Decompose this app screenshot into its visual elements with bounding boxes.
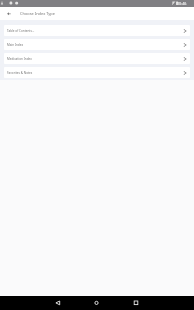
button[interactable]: Favorites & Notes — [4, 67, 190, 78]
staticText: Favorites & Notes — [7, 71, 33, 75]
staticText: Medication Index — [7, 57, 32, 61]
button[interactable]: Navigate up — [0, 7, 17, 20]
button[interactable]: Back — [0, 296, 78, 310]
staticText: 10:46 — [177, 1, 187, 6]
button[interactable]: Recent apps — [116, 296, 194, 310]
staticText: Main Index — [7, 43, 23, 47]
staticText: Table of Contents... — [7, 29, 35, 33]
staticText: Choose Index Type — [20, 11, 56, 16]
button[interactable]: Main Index — [4, 39, 190, 50]
button[interactable]: Medication Index — [4, 53, 190, 64]
button[interactable]: Home — [78, 296, 116, 310]
button[interactable]: Table of Contents... — [4, 25, 190, 36]
